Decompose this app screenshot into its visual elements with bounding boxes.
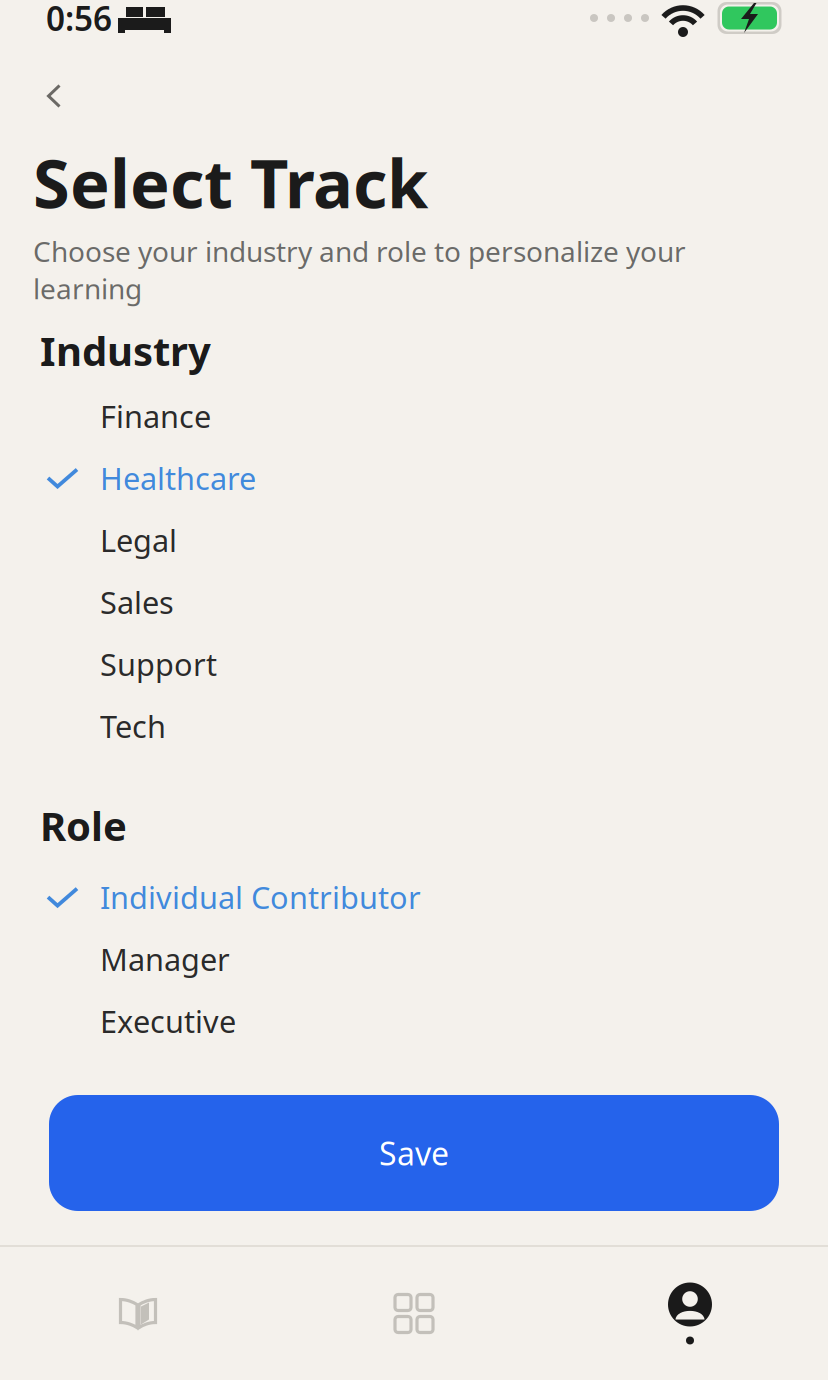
staticText: Choose your industry and role to persona… xyxy=(33,232,686,307)
staticText: Role xyxy=(40,799,127,852)
staticText: Healthcare xyxy=(100,458,256,498)
staticText: Select Track xyxy=(33,138,428,226)
button[interactable]: Tech xyxy=(0,695,828,757)
button[interactable]: Support xyxy=(0,633,828,695)
staticText: 0:56 xyxy=(46,0,112,40)
button[interactable]: Profile xyxy=(552,1247,828,1380)
staticText: Industry xyxy=(40,324,211,377)
staticText: Save xyxy=(379,1132,449,1174)
staticText: Finance xyxy=(100,396,211,436)
staticText: Executive xyxy=(100,1001,236,1041)
button[interactable]: Save xyxy=(49,1095,779,1211)
staticText: Support xyxy=(100,644,217,684)
staticText: Individual Contributor xyxy=(100,877,421,917)
button[interactable]: Browse xyxy=(276,1247,552,1380)
button[interactable]: Legal xyxy=(0,509,828,571)
button[interactable]: Finance xyxy=(0,385,828,447)
button[interactable]: Back xyxy=(0,36,88,114)
button[interactable]: Executive xyxy=(0,990,828,1052)
staticText: Sales xyxy=(100,582,174,622)
button[interactable]: Manager xyxy=(0,928,828,990)
staticText: Legal xyxy=(100,520,177,560)
button[interactable]: Library xyxy=(0,1247,276,1380)
button[interactable]: Healthcare xyxy=(0,447,828,509)
staticText: Tech xyxy=(100,706,166,746)
staticText: Manager xyxy=(100,939,230,979)
button[interactable]: Individual Contributor xyxy=(0,866,828,928)
button[interactable]: Sales xyxy=(0,571,828,633)
